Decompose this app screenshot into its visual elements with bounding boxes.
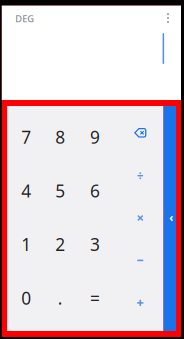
button[interactable]: Show more functions	[163, 106, 176, 331]
staticText: 3	[90, 233, 100, 256]
staticText: 9	[90, 125, 100, 148]
button[interactable]: 4	[7, 167, 45, 215]
button[interactable]: More options	[158, 8, 178, 28]
staticText: .	[58, 286, 63, 309]
staticText: 6	[90, 179, 100, 202]
staticText: DEG	[15, 12, 34, 25]
button[interactable]: Subtract	[123, 240, 157, 280]
button[interactable]: 8	[41, 113, 79, 161]
staticText: 1	[21, 233, 31, 256]
staticText: 2	[55, 233, 65, 256]
button[interactable]: 0	[7, 274, 45, 322]
staticText: 8	[55, 125, 65, 148]
button[interactable]: 9	[76, 113, 114, 161]
button[interactable]: .	[41, 274, 79, 322]
button[interactable]: Divide	[123, 156, 157, 196]
staticText: 5	[55, 179, 65, 202]
button[interactable]: 5	[41, 167, 79, 215]
staticText: 0	[21, 286, 31, 309]
staticText: 4	[21, 179, 31, 202]
button[interactable]: 6	[76, 167, 114, 215]
button[interactable]: Multiply	[123, 198, 157, 238]
button[interactable]: Add	[123, 283, 157, 323]
button[interactable]: 7	[7, 113, 45, 161]
staticText: =	[90, 286, 100, 309]
button[interactable]: =	[76, 274, 114, 322]
button[interactable]: 2	[41, 220, 79, 268]
staticText: 7	[21, 125, 31, 148]
button[interactable]: Backspace	[123, 113, 157, 153]
button[interactable]: 3	[76, 220, 114, 268]
button[interactable]: 1	[7, 220, 45, 268]
